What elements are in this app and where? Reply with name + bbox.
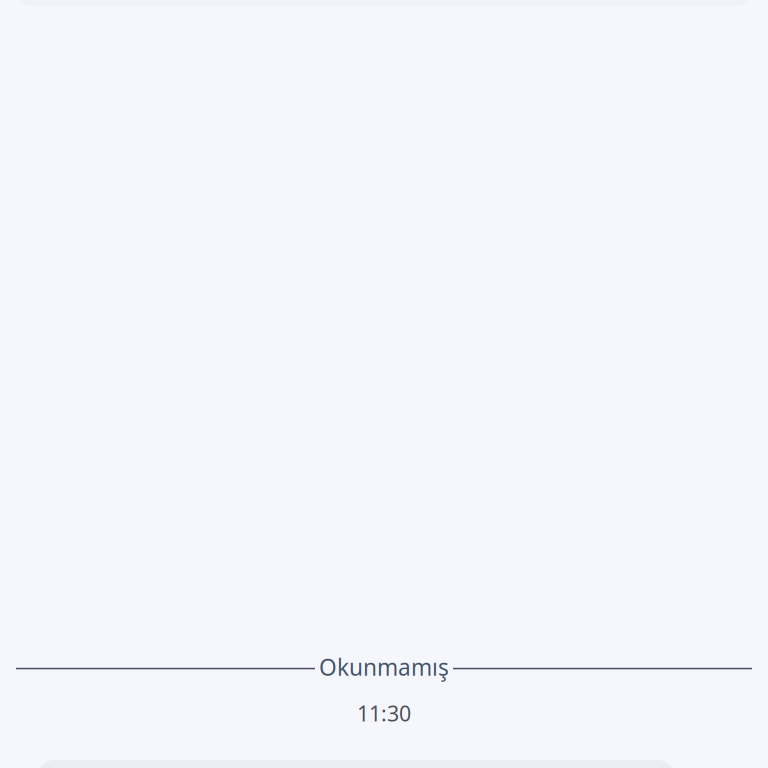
staticText: Okunmamış: [319, 652, 449, 682]
staticText: 11:30: [357, 699, 411, 727]
button[interactable]: Unread message: [0, 760, 768, 768]
